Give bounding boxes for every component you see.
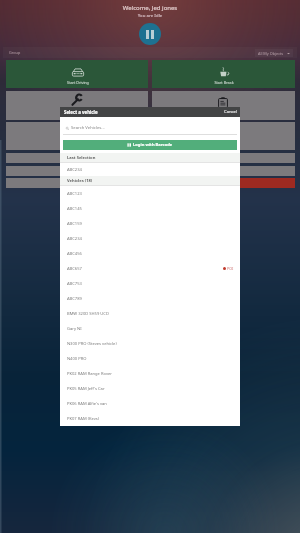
- staticText: PK07 RAM (Kevs): [67, 416, 99, 422]
- button[interactable]: Option: [152, 166, 295, 176]
- staticText: Start Driving: [38, 80, 118, 85]
- staticText: Last Selection: [67, 155, 96, 161]
- staticText: ABC456: [67, 251, 82, 257]
- button[interactable]: Option: [6, 166, 148, 176]
- button[interactable]: Log out: [152, 178, 295, 188]
- button[interactable]: Option: [6, 153, 148, 163]
- button[interactable]: ABC159: [67, 216, 234, 231]
- staticText: ABC753: [67, 281, 82, 287]
- staticText: ABC657: [67, 266, 82, 272]
- staticText: Group: [9, 50, 21, 55]
- button[interactable]: Login with Barcode: [63, 140, 237, 150]
- staticText: Search Vehicles...: [71, 125, 105, 131]
- staticText: Start Break: [184, 80, 264, 85]
- staticText: PK06 RAM Alfie's van: [67, 401, 107, 407]
- staticText: ABC145: [67, 206, 82, 212]
- button[interactable]: PK07 RAM (Kevs): [67, 411, 234, 426]
- button[interactable]: PK06 RAM Alfie's van: [67, 396, 234, 411]
- button[interactable]: ABC456: [67, 246, 234, 261]
- staticText: ABC789: [67, 296, 82, 302]
- button[interactable]: Vehicle maintenance: [6, 91, 148, 120]
- staticText: ABC234: [67, 236, 82, 242]
- button[interactable]: ABC657: [67, 261, 234, 276]
- button[interactable]: BMW 320D SH59 UCD: [67, 306, 234, 321]
- button[interactable]: PK02 RAM Range Rover: [67, 366, 234, 381]
- staticText: Select a vehicle: [64, 109, 98, 115]
- staticText: All My Objects: [258, 51, 284, 56]
- staticText: BMW 320D SH59 UCD: [67, 311, 109, 317]
- button[interactable]: PK05 RAM Jeff's Car: [67, 381, 234, 396]
- button[interactable]: Option: [152, 122, 295, 150]
- staticText: Welcome, Jed jones: [0, 4, 300, 12]
- button[interactable]: N300 PRO (Steves vehicle): [67, 336, 234, 351]
- staticText: PK02 RAM Range Rover: [67, 371, 112, 377]
- staticText: ABC234: [67, 167, 82, 173]
- button[interactable]: ABC234: [67, 231, 234, 246]
- staticText: N400 PRO: [67, 356, 87, 362]
- button[interactable]: Start Driving: [6, 60, 148, 88]
- button[interactable]: ABC145: [67, 201, 234, 216]
- button[interactable]: Start Break: [152, 60, 295, 88]
- staticText: PK05 RAM Jeff's Car: [67, 386, 105, 392]
- button[interactable]: Daily checks: [152, 91, 295, 120]
- button[interactable]: Group: [3, 47, 297, 58]
- staticText: Login with Barcode: [133, 142, 173, 148]
- button[interactable]: ABC234: [67, 163, 234, 176]
- staticText: You are Idle: [0, 13, 300, 19]
- staticText: Gary NI: [67, 326, 82, 332]
- staticText: POI: [227, 266, 234, 271]
- button[interactable]: Option: [6, 122, 148, 150]
- button[interactable]: ABC123: [67, 186, 234, 201]
- button[interactable]: Gary NI: [67, 321, 234, 336]
- staticText: N300 PRO (Steves vehicle): [67, 341, 117, 347]
- staticText: Cancel: [224, 109, 238, 115]
- button[interactable]: Option: [6, 178, 148, 188]
- button[interactable]: ABC753: [67, 276, 234, 291]
- staticText: ABC159: [67, 221, 82, 227]
- button[interactable]: Pause: [139, 23, 161, 45]
- button[interactable]: Search Vehicles...: [66, 122, 240, 134]
- button[interactable]: Cancel: [224, 109, 238, 115]
- button[interactable]: ABC789: [67, 291, 234, 306]
- staticText: ABC123: [67, 191, 82, 197]
- staticText: Vehicles (18): [67, 178, 93, 184]
- button[interactable]: N400 PRO: [67, 351, 234, 366]
- button[interactable]: Option: [152, 153, 295, 163]
